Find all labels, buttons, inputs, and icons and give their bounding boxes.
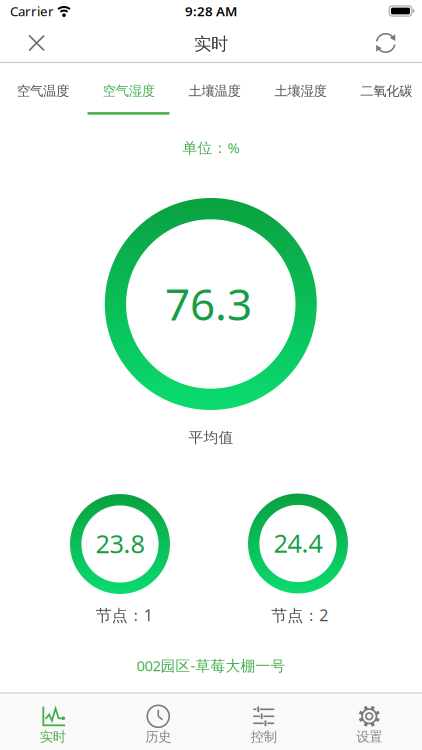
button[interactable]: 空气湿度 <box>103 83 155 99</box>
button[interactable]: 二氧化碳 <box>360 83 412 99</box>
staticText: 平均值 <box>188 428 233 446</box>
staticText: 9:28 AM <box>185 2 237 20</box>
staticText: 土壤湿度 <box>274 83 326 99</box>
staticText: 二氧化碳 <box>360 83 412 99</box>
button[interactable]: 控制 <box>211 693 316 750</box>
staticText: 空气温度 <box>17 83 69 99</box>
staticText: 002园区-草莓大棚一号 <box>136 656 285 675</box>
button[interactable]: 设置 <box>316 693 422 750</box>
staticText: 历史 <box>145 728 171 745</box>
button[interactable]: Refresh <box>375 32 397 54</box>
staticText: 设置 <box>356 728 382 745</box>
staticText: 土壤温度 <box>189 83 241 99</box>
staticText: 76.3 <box>165 274 252 333</box>
button[interactable]: Close <box>28 35 45 51</box>
staticText: 空气湿度 <box>103 83 155 99</box>
button[interactable]: 空气温度 <box>17 83 69 99</box>
button[interactable]: 土壤温度 <box>189 83 241 99</box>
staticText: 24.4 <box>273 526 322 560</box>
staticText: 控制 <box>251 728 277 745</box>
staticText: 23.8 <box>95 527 144 560</box>
staticText: 实时 <box>40 728 66 745</box>
staticText: 节点：2 <box>271 604 328 626</box>
button[interactable]: 土壤湿度 <box>274 83 326 99</box>
button[interactable]: 历史 <box>105 693 211 750</box>
staticText: Carrier <box>10 2 54 20</box>
staticText: 实时 <box>194 33 228 55</box>
staticText: 单位：% <box>182 138 239 157</box>
button[interactable]: 实时 <box>0 693 105 750</box>
staticText: 节点：1 <box>96 604 153 626</box>
